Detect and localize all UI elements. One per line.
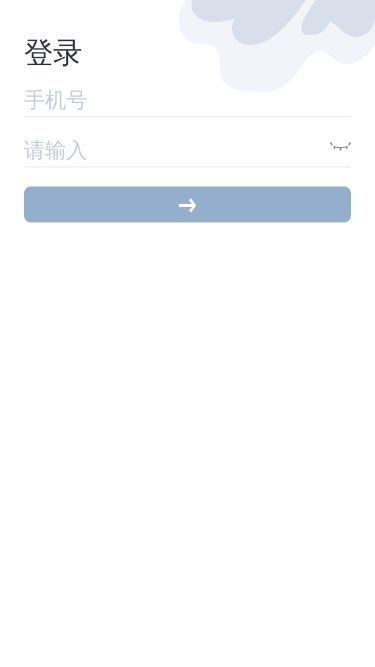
staticText: 请输入 bbox=[24, 137, 87, 163]
button[interactable]: Show password bbox=[326, 137, 351, 163]
button[interactable]: Continue bbox=[24, 186, 351, 222]
staticText: 手机号 bbox=[24, 87, 87, 113]
staticText: 登录 bbox=[24, 35, 82, 71]
